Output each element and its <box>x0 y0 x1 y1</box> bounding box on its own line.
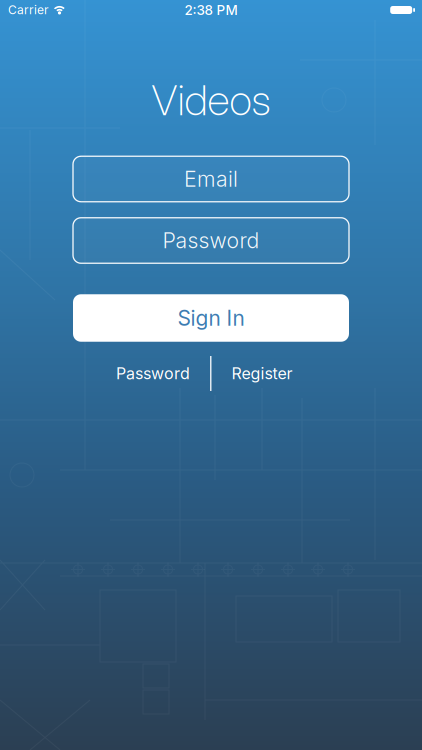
button[interactable]: Email <box>73 156 349 202</box>
staticText: 2:38 PM <box>184 2 237 18</box>
button[interactable]: Register <box>231 364 331 383</box>
button[interactable]: Password <box>90 364 190 383</box>
staticText: Password <box>116 364 190 383</box>
button[interactable]: Password <box>73 218 349 263</box>
staticText: Email <box>184 166 238 192</box>
staticText: Password <box>162 228 259 253</box>
button[interactable]: Sign In <box>73 294 349 342</box>
staticText: Sign In <box>177 305 244 331</box>
staticText: Register <box>231 364 292 383</box>
staticText: Videos <box>151 75 270 125</box>
staticText: Carrier <box>8 3 49 17</box>
